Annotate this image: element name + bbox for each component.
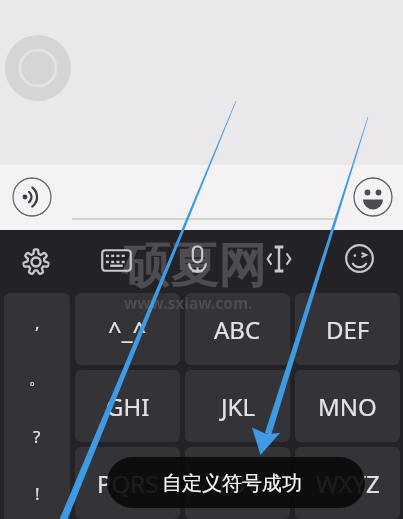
staticText: PQRS [97, 467, 159, 500]
button[interactable]: 自定义符号成功 [107, 457, 365, 508]
staticText: MNO [318, 390, 377, 423]
button[interactable]: MNO [295, 370, 400, 442]
button[interactable]: Voice input [175, 237, 220, 282]
staticText: ^_^ [108, 313, 147, 346]
button[interactable]: Settings [15, 241, 57, 283]
staticText: ABC [214, 313, 261, 346]
staticText: TUV [215, 467, 261, 500]
staticText: 自定义符号成功 [162, 471, 302, 496]
button[interactable]: WXYZ [295, 447, 400, 519]
button[interactable]: ^_^ [75, 293, 180, 365]
staticText: 硕夏网 [122, 236, 266, 296]
button[interactable]: Avatar [5, 35, 71, 101]
button[interactable]: ABC [185, 293, 290, 365]
button[interactable]: Stickers [338, 237, 381, 280]
staticText: ? [33, 425, 41, 448]
staticText: www.sxiaw.com. [124, 292, 253, 313]
button[interactable]: Text cursor [257, 237, 301, 281]
staticText: GHI [106, 390, 150, 423]
button[interactable]: Keyboard [94, 238, 139, 283]
staticText: JKL [221, 390, 255, 423]
staticText: ! [35, 482, 40, 505]
staticText: DEF [326, 313, 370, 346]
staticText: WXYZ [316, 467, 380, 500]
staticText: 。 [29, 368, 46, 389]
button[interactable]: Voice input [12, 177, 52, 217]
button[interactable]: DEF [295, 293, 400, 365]
button[interactable]: Emoji [353, 177, 393, 217]
button[interactable]: Punctuation [4, 293, 70, 519]
button[interactable]: GHI [75, 370, 180, 442]
staticText: , [35, 311, 40, 334]
button[interactable]: PQRS [75, 447, 180, 519]
button[interactable]: JKL [185, 370, 290, 442]
button[interactable]: TUV [185, 447, 290, 519]
